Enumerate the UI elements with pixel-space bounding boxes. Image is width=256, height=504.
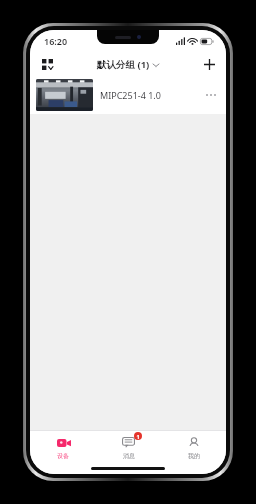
staticText: 设备: [57, 452, 69, 460]
staticText: 我的: [188, 452, 200, 460]
button[interactable]: 默认分组 (1): [93, 56, 163, 73]
button[interactable]: MIPC251-4 1.0: [30, 76, 226, 114]
button[interactable]: Device grid: [36, 53, 58, 75]
button[interactable]: 我的: [161, 431, 226, 463]
button[interactable]: 1: [96, 431, 161, 463]
button[interactable]: More options: [202, 86, 220, 104]
staticText: 默认分组 (1): [97, 58, 150, 71]
staticText: MIPC251-4 1.0: [100, 89, 202, 101]
staticText: 16:20: [44, 35, 68, 47]
button[interactable]: 设备: [30, 431, 96, 463]
staticText: 1: [136, 433, 140, 440]
button[interactable]: Add device: [198, 53, 220, 75]
staticText: 消息: [123, 452, 135, 460]
